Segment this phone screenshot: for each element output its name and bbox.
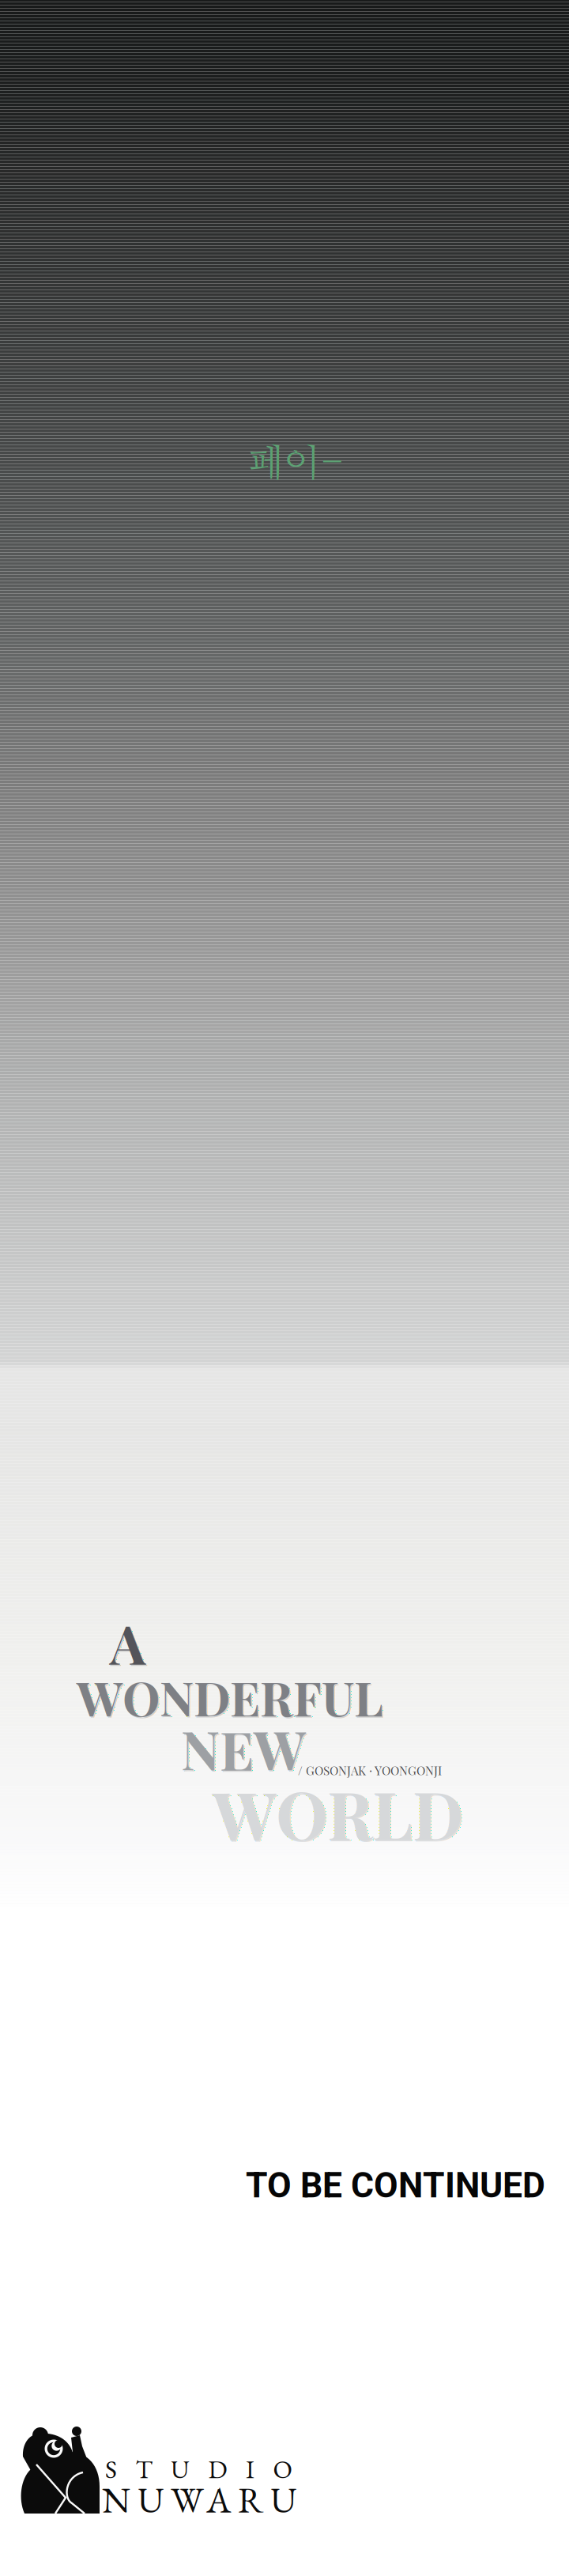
- staticText: WONDERFUL: [78, 1666, 384, 1729]
- staticText: WORLD: [214, 1770, 464, 1858]
- staticText: NEW: [182, 1714, 307, 1785]
- staticText: 페이-: [247, 445, 345, 483]
- staticText: / GOSONJAK · YOONGONJI: [298, 1762, 442, 1778]
- staticText: NEW: [181, 1712, 306, 1784]
- staticText: STUDIO: [105, 2453, 292, 2486]
- staticText: WORLD: [213, 1769, 463, 1856]
- staticText: NUWARU: [102, 2476, 296, 2523]
- staticText: WONDERFUL: [77, 1665, 383, 1728]
- staticText: TO BE CONTINUED: [246, 2165, 545, 2206]
- staticText: A: [111, 1608, 147, 1679]
- staticText: A: [110, 1606, 145, 1678]
